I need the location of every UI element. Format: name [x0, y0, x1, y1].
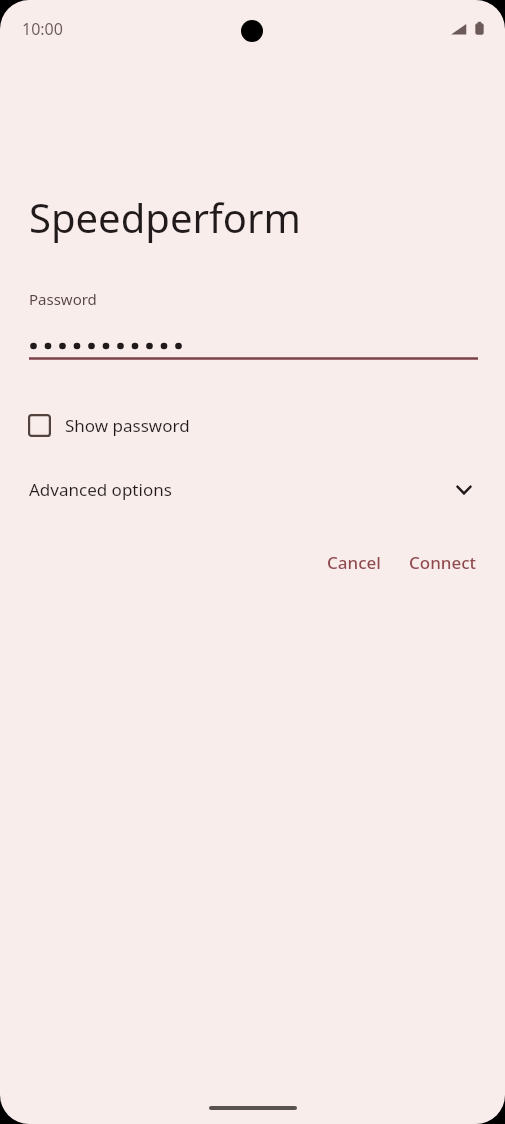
staticText: Connect: [409, 551, 477, 574]
button[interactable]: Cancel: [315, 543, 393, 582]
staticText: Show password: [65, 414, 190, 437]
staticText: Cancel: [327, 551, 381, 574]
staticText: 10:00: [22, 18, 63, 40]
button[interactable]: [29, 329, 478, 359]
button[interactable]: Advanced options: [0, 472, 505, 507]
staticText: Password: [29, 289, 97, 309]
staticText: Speedperform: [29, 190, 301, 244]
staticText: Advanced options: [29, 478, 172, 501]
button[interactable]: Show password: [28, 410, 202, 441]
button[interactable]: Connect: [397, 543, 489, 582]
